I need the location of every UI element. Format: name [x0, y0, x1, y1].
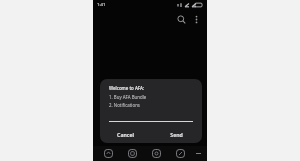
staticText: Cancel	[117, 131, 134, 138]
button[interactable]: More options	[189, 12, 203, 26]
staticText: Send	[170, 131, 183, 138]
button[interactable]: Status	[144, 146, 168, 161]
staticText: 1:41	[97, 2, 106, 8]
staticText: Welcome to AFA:	[109, 85, 145, 91]
staticText: 1. Buy AFA Bundle	[109, 94, 147, 100]
button[interactable]: Home	[96, 146, 120, 161]
button[interactable]: Search	[173, 11, 189, 27]
button[interactable]: Chats	[120, 146, 144, 161]
staticText: 2. Notifications	[109, 102, 140, 108]
button[interactable]: Send	[151, 127, 202, 141]
button[interactable]: Cancel	[100, 127, 151, 141]
button[interactable]: Calls	[168, 146, 192, 161]
